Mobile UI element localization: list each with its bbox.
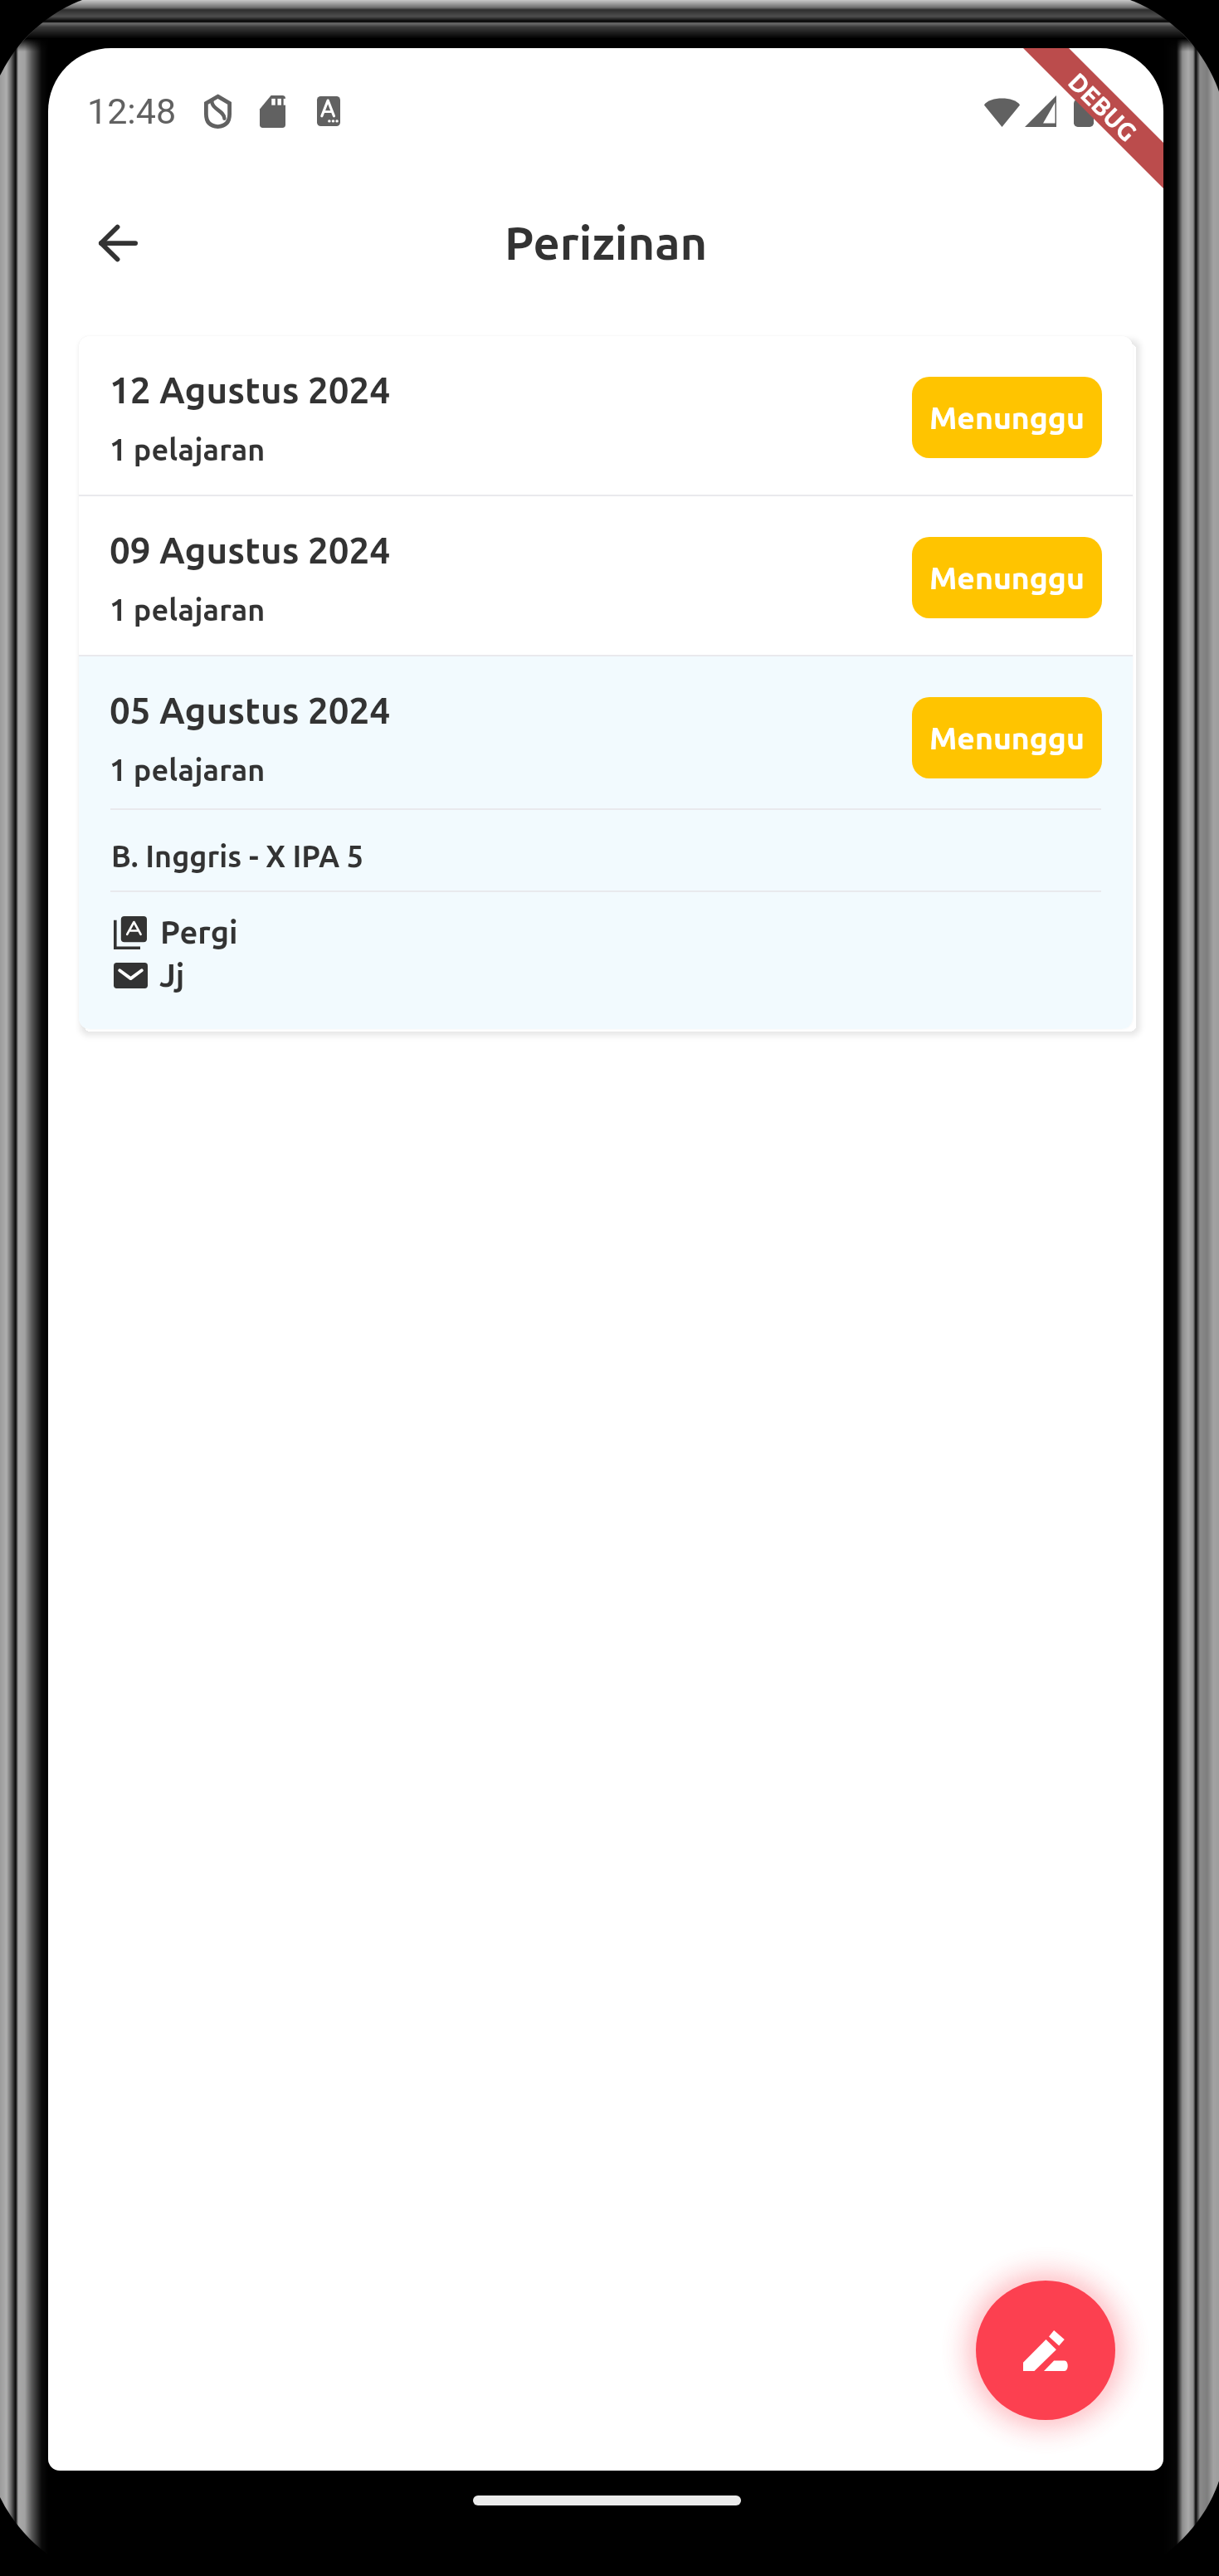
staticText: 12:48 [87, 90, 177, 132]
staticText: 12 Agustus 2024 [110, 369, 391, 410]
staticText: Menunggu [929, 560, 1085, 595]
staticText: 1 pelajaran [110, 593, 266, 626]
button[interactable]: Menunggu [912, 697, 1102, 778]
button[interactable]: 09 Agustus 2024 [79, 496, 1133, 655]
button[interactable]: Menunggu [912, 537, 1102, 618]
staticText: Pergi [160, 915, 238, 950]
staticText: 05 Agustus 2024 [110, 690, 391, 730]
staticText: Perizinan [505, 217, 708, 269]
staticText: Menunggu [929, 400, 1085, 435]
button[interactable]: Create [976, 2281, 1115, 2420]
button[interactable]: 05 Agustus 2024 [79, 656, 1133, 808]
button[interactable]: 12 Agustus 2024 [79, 336, 1133, 495]
staticText: 1 pelajaran [110, 432, 266, 466]
staticText: B. Inggris - X IPA 5 [111, 839, 364, 872]
staticText: Jj [159, 958, 185, 993]
staticText: 09 Agustus 2024 [110, 529, 391, 570]
button[interactable]: Menunggu [912, 377, 1102, 458]
staticText: 1 pelajaran [110, 753, 266, 786]
staticText: Menunggu [929, 720, 1085, 755]
staticText: DEBUG [1063, 67, 1143, 147]
button[interactable]: Back [80, 205, 156, 281]
